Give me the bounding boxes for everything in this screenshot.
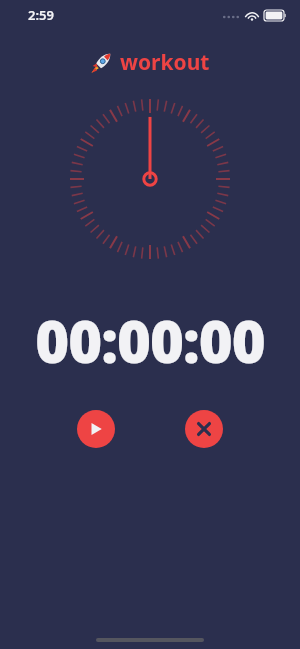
staticText: 00:00:00 (0, 301, 300, 380)
button[interactable]: Reset (185, 410, 223, 448)
button[interactable]: Start (77, 410, 115, 448)
staticText: 2:59 (28, 6, 54, 24)
staticText: workout (120, 48, 210, 77)
